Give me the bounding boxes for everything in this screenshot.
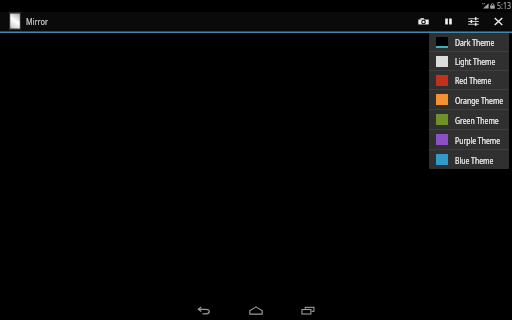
- button[interactable]: Orange Theme: [429, 90, 509, 109]
- button[interactable]: Dark Theme: [429, 33, 509, 51]
- staticText: Green Theme: [455, 115, 509, 127]
- staticText: Red Theme: [455, 75, 509, 87]
- button[interactable]: Red Theme: [429, 71, 509, 89]
- staticText: Dark Theme: [455, 37, 509, 49]
- button[interactable]: Home: [240, 291, 272, 320]
- staticText: Mirror: [26, 15, 48, 28]
- staticText: Light Theme: [455, 56, 509, 68]
- button[interactable]: Purple Theme: [429, 130, 509, 149]
- button[interactable]: Back: [188, 291, 220, 320]
- button[interactable]: Close: [486, 12, 511, 31]
- staticText: Orange Theme: [455, 95, 509, 107]
- button[interactable]: Settings: [461, 12, 486, 31]
- button[interactable]: Camera: [411, 12, 436, 31]
- button[interactable]: Recents: [292, 291, 324, 320]
- button[interactable]: Blue Theme: [429, 150, 509, 169]
- staticText: Purple Theme: [455, 135, 509, 147]
- button[interactable]: Pause: [436, 12, 461, 31]
- button[interactable]: Green Theme: [429, 110, 509, 129]
- button[interactable]: Light Theme: [429, 52, 509, 70]
- staticText: 5:13: [497, 0, 512, 12]
- staticText: Blue Theme: [455, 155, 509, 167]
